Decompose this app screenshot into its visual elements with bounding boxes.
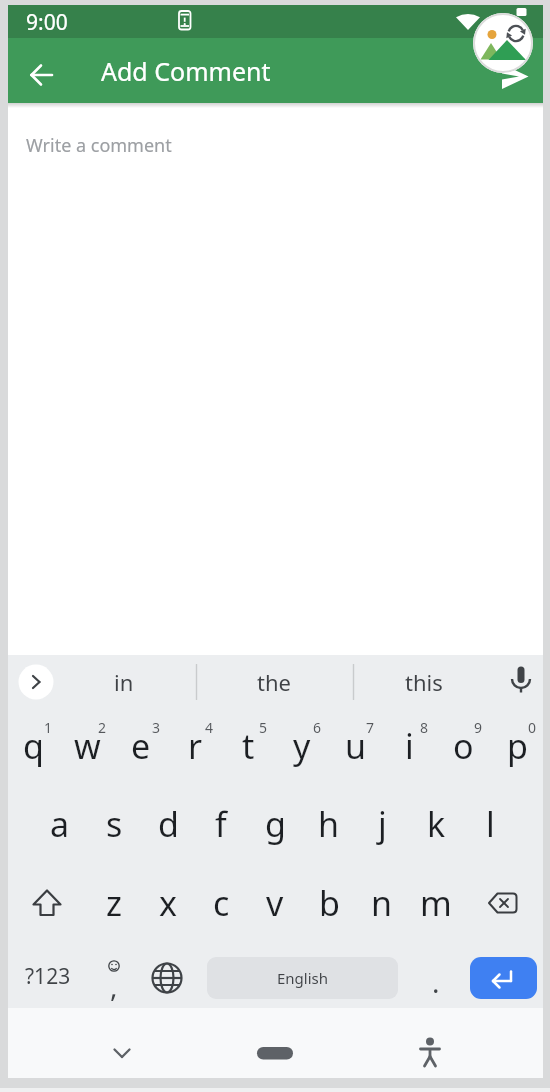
button[interactable]: f [194, 786, 248, 862]
staticText: 9:00 [26, 8, 68, 37]
staticText: 2 [98, 718, 107, 737]
staticText: v [266, 880, 284, 926]
button[interactable]: u [329, 708, 383, 784]
button[interactable] [406, 1030, 454, 1076]
button[interactable]: , [44, 956, 184, 1016]
button[interactable]: o [436, 708, 490, 784]
button[interactable]: t [221, 708, 275, 784]
button[interactable]: h [302, 786, 356, 862]
button[interactable]: s [87, 786, 141, 862]
staticText: k [427, 801, 446, 847]
staticText: q [23, 723, 44, 769]
button[interactable]: l [463, 786, 517, 862]
staticText: n [371, 880, 393, 926]
staticText: w [74, 723, 101, 769]
button[interactable]: this [354, 652, 494, 712]
staticText: Write a comment [26, 133, 172, 158]
staticText: j [378, 801, 387, 847]
staticText: 9 [474, 718, 483, 737]
button[interactable] [145, 956, 190, 1001]
button[interactable]: . [366, 952, 506, 1012]
staticText: Add Comment [101, 54, 271, 88]
staticText: 5 [259, 718, 268, 737]
staticText: m [420, 880, 452, 926]
button[interactable]: g [248, 786, 302, 862]
button[interactable] [98, 1030, 146, 1076]
button[interactable]: a [33, 786, 87, 862]
staticText: 3 [152, 718, 161, 737]
button[interactable]: ?123 [0, 946, 118, 1006]
staticText: . [432, 963, 440, 1001]
staticText: r [188, 723, 203, 769]
button[interactable]: z [87, 865, 141, 941]
button[interactable]: c [194, 865, 248, 941]
button[interactable]: q [6, 708, 60, 784]
button[interactable] [14, 867, 84, 939]
staticText: ?123 [25, 962, 71, 991]
button[interactable]: i [382, 708, 436, 784]
staticText: u [345, 723, 367, 769]
staticText: 7 [366, 718, 375, 737]
button[interactable]: English [207, 957, 398, 999]
button[interactable]: d [141, 786, 195, 862]
staticText: s [106, 801, 123, 847]
button[interactable]: v [248, 865, 302, 941]
button[interactable]: n [355, 865, 409, 941]
staticText: , [110, 967, 118, 1005]
staticText: 0 [528, 718, 537, 737]
button[interactable] [18, 52, 64, 98]
button[interactable]: Write a comment [26, 120, 426, 170]
button[interactable]: in [54, 652, 194, 712]
button[interactable]: y [275, 708, 329, 784]
staticText: 4 [205, 718, 214, 737]
button[interactable]: j [355, 786, 409, 862]
staticText: f [215, 801, 227, 847]
staticText: l [486, 801, 495, 847]
staticText: x [159, 880, 177, 926]
staticText: z [106, 880, 122, 926]
button[interactable] [473, 13, 533, 73]
button[interactable]: k [409, 786, 463, 862]
button[interactable]: w [60, 708, 114, 784]
staticText: i [405, 723, 414, 769]
staticText: in [114, 667, 134, 697]
button[interactable]: x [141, 865, 195, 941]
staticText: a [50, 801, 70, 847]
button[interactable] [467, 867, 539, 939]
staticText: b [319, 880, 340, 926]
staticText: 1 [44, 718, 53, 737]
staticText: g [265, 801, 286, 847]
button[interactable] [470, 957, 537, 999]
button[interactable]: e [114, 708, 168, 784]
staticText: h [318, 801, 340, 847]
staticText: c [213, 880, 230, 926]
button[interactable]: m [409, 865, 463, 941]
staticText: o [453, 723, 474, 769]
button[interactable]: the [204, 652, 344, 712]
staticText: e [131, 723, 151, 769]
button[interactable]: b [302, 865, 356, 941]
staticText: t [242, 723, 255, 769]
button[interactable]: r [168, 708, 222, 784]
button[interactable] [251, 1030, 299, 1076]
staticText: this [405, 667, 443, 697]
staticText: 8 [420, 718, 429, 737]
staticText: y [293, 723, 311, 769]
staticText: 6 [313, 718, 322, 737]
staticText: the [257, 667, 291, 697]
button[interactable]: p [490, 708, 544, 784]
staticText: p [507, 723, 528, 769]
staticText: d [158, 801, 179, 847]
staticText: English [277, 968, 329, 988]
